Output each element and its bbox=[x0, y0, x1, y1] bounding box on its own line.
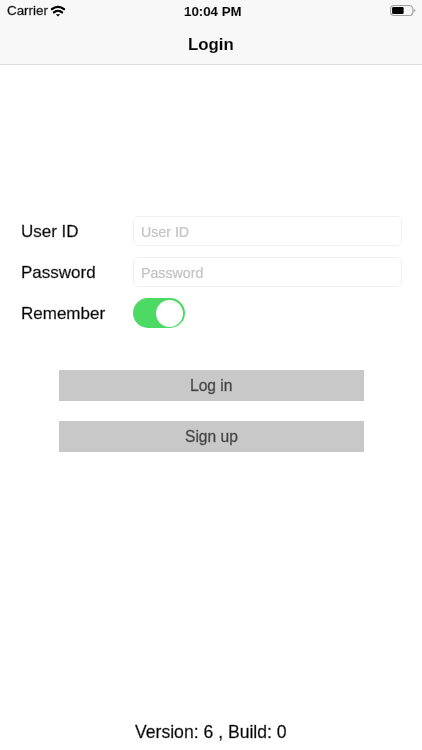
staticText: Sign up bbox=[185, 428, 238, 445]
staticText: Carrier bbox=[7, 3, 48, 18]
staticText: Password bbox=[21, 263, 96, 282]
button[interactable]: Password bbox=[133, 257, 402, 287]
staticText: User ID bbox=[21, 222, 79, 241]
staticText: 10:04 PM bbox=[184, 4, 242, 19]
staticText: Login bbox=[188, 35, 234, 54]
button[interactable]: User ID bbox=[133, 216, 402, 246]
staticText: Carrier bbox=[7, 3, 48, 18]
button[interactable]: Remember me bbox=[133, 298, 185, 328]
staticText: Sign up bbox=[185, 428, 238, 445]
button[interactable]: Log in bbox=[59, 370, 364, 401]
staticText: Remember bbox=[21, 304, 106, 323]
staticText: Password bbox=[141, 265, 204, 281]
staticText: User ID bbox=[21, 222, 79, 241]
staticText: 10:04 PM bbox=[184, 4, 242, 19]
staticText: Password bbox=[21, 263, 96, 282]
staticText: Version: 6 , Build: 0 bbox=[135, 722, 287, 742]
staticText: Remember bbox=[21, 304, 106, 323]
staticText: User ID bbox=[141, 224, 190, 240]
button[interactable]: Sign up bbox=[59, 421, 364, 452]
staticText: Login bbox=[188, 35, 234, 54]
staticText: Version: 6 , Build: 0 bbox=[135, 722, 287, 742]
staticText: Log in bbox=[190, 377, 233, 394]
staticText: Log in bbox=[190, 377, 233, 394]
